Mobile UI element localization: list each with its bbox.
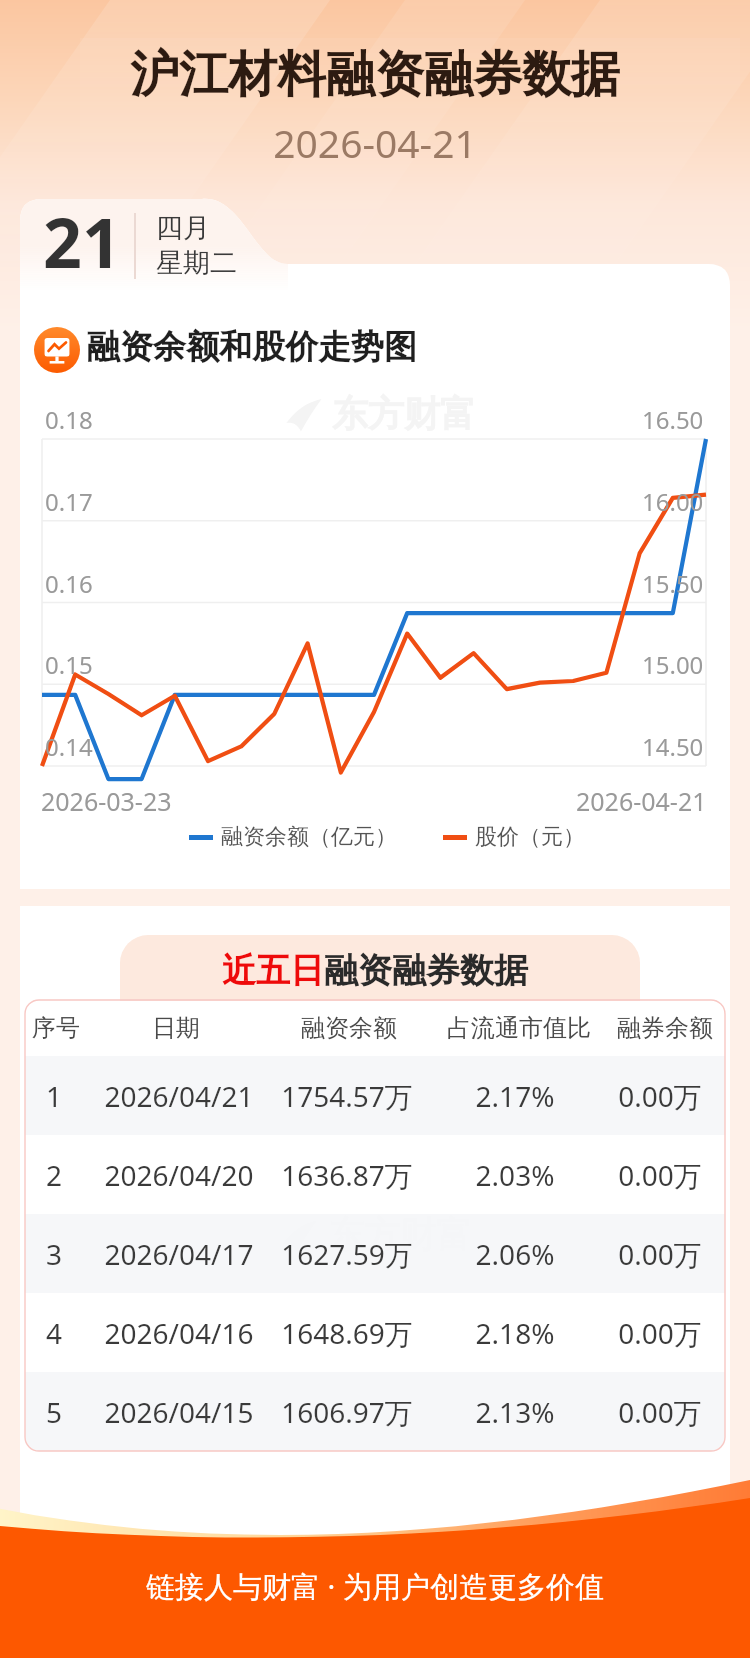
- staticText: 2.17%: [425, 1077, 605, 1115]
- staticText: 0.00万: [570, 1314, 725, 1352]
- button[interactable]: 2: [25, 1135, 725, 1214]
- staticText: 1: [25, 1077, 144, 1115]
- staticText: 2026-04-21: [576, 784, 707, 818]
- button[interactable]: 1: [25, 1056, 725, 1135]
- staticText: 融资余额（亿元）: [221, 823, 397, 851]
- staticText: 占流通市值比: [429, 1013, 609, 1043]
- staticText: 链接人与财富 · 为用户创造更多价值: [0, 1566, 750, 1606]
- staticText: 2026/04/21: [89, 1077, 269, 1115]
- staticText: 0.00万: [570, 1156, 725, 1194]
- staticText: 0.15: [45, 648, 93, 681]
- staticText: 2026/04/17: [89, 1235, 269, 1273]
- staticText: 5: [25, 1393, 144, 1431]
- staticText: 2.18%: [425, 1314, 605, 1352]
- staticText: 4: [25, 1314, 144, 1352]
- staticText: 融资余额和股价走势图: [87, 326, 417, 368]
- staticText: 融资余额: [259, 1013, 439, 1043]
- staticText: 2026-04-21: [0, 116, 750, 169]
- staticText: 15.00: [642, 648, 704, 681]
- staticText: 21: [43, 195, 121, 288]
- staticText: 2026-03-23: [41, 784, 172, 818]
- staticText: 0.00万: [570, 1235, 725, 1273]
- staticText: 0.16: [45, 567, 93, 600]
- staticText: 0.14: [45, 730, 93, 763]
- staticText: 2.13%: [425, 1393, 605, 1431]
- staticText: 2: [25, 1156, 144, 1194]
- staticText: 2026/04/20: [89, 1156, 269, 1194]
- staticText: 融券余额: [575, 1013, 725, 1043]
- staticText: 股价（元）: [475, 823, 585, 851]
- staticText: 东方财富: [332, 391, 476, 436]
- button[interactable]: 3: [25, 1214, 725, 1293]
- staticText: 1627.59万: [257, 1235, 437, 1273]
- staticText: 2026/04/16: [89, 1314, 269, 1352]
- button[interactable]: 4: [25, 1293, 725, 1372]
- staticText: 14.50: [642, 730, 704, 763]
- staticText: 1636.87万: [257, 1156, 437, 1194]
- staticText: 日期: [86, 1013, 266, 1043]
- staticText: 东方财富: [328, 1212, 472, 1257]
- staticText: 四月: [156, 211, 210, 245]
- staticText: 星期二: [156, 246, 237, 280]
- staticText: 近五日融资融券数据: [0, 949, 750, 992]
- staticText: 0.17: [45, 485, 93, 518]
- staticText: 16.00: [642, 485, 704, 518]
- staticText: 2.06%: [425, 1235, 605, 1273]
- staticText: 2.03%: [425, 1156, 605, 1194]
- staticText: 1606.97万: [257, 1393, 437, 1431]
- staticText: 0.00万: [570, 1393, 725, 1431]
- staticText: 3: [25, 1235, 144, 1273]
- other: Chart: [34, 327, 80, 373]
- staticText: 0.00万: [570, 1077, 725, 1115]
- staticText: 15.50: [642, 567, 704, 600]
- staticText: 沪江材料融资融券数据: [0, 44, 750, 106]
- staticText: 序号: [25, 1013, 146, 1043]
- staticText: 1648.69万: [257, 1314, 437, 1352]
- staticText: 0.18: [45, 403, 93, 436]
- button[interactable]: 5: [25, 1372, 725, 1451]
- staticText: 2026/04/15: [89, 1393, 269, 1431]
- staticText: 1754.57万: [257, 1077, 437, 1115]
- staticText: 16.50: [642, 403, 704, 436]
